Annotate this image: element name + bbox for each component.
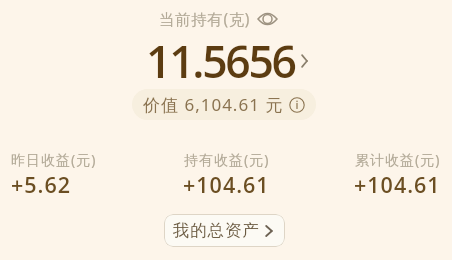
staticText: 持有收益(元) — [184, 150, 270, 169]
staticText: 当前持有(克) — [159, 8, 251, 29]
staticText: +104.61 — [183, 170, 270, 199]
staticText: +5.62 — [11, 170, 72, 199]
staticText: 我的总资产 — [173, 220, 260, 241]
button[interactable]: 11.5656 — [146, 30, 308, 91]
button[interactable]: 我的总资产 — [164, 214, 285, 247]
staticText: 累计收益(元) — [355, 150, 441, 169]
staticText: 价值 6,104.61 元 — [143, 93, 284, 116]
button[interactable]: 当前持有(克) — [159, 8, 278, 29]
staticText: +104.61 — [354, 170, 441, 199]
button[interactable]: 价值 6,104.61 元 — [132, 89, 316, 120]
other: Toggle balance visibility — [257, 10, 278, 28]
other: Value details — [289, 97, 305, 113]
staticText: 11.5656 — [146, 30, 295, 91]
staticText: 昨日收益(元) — [11, 150, 97, 169]
